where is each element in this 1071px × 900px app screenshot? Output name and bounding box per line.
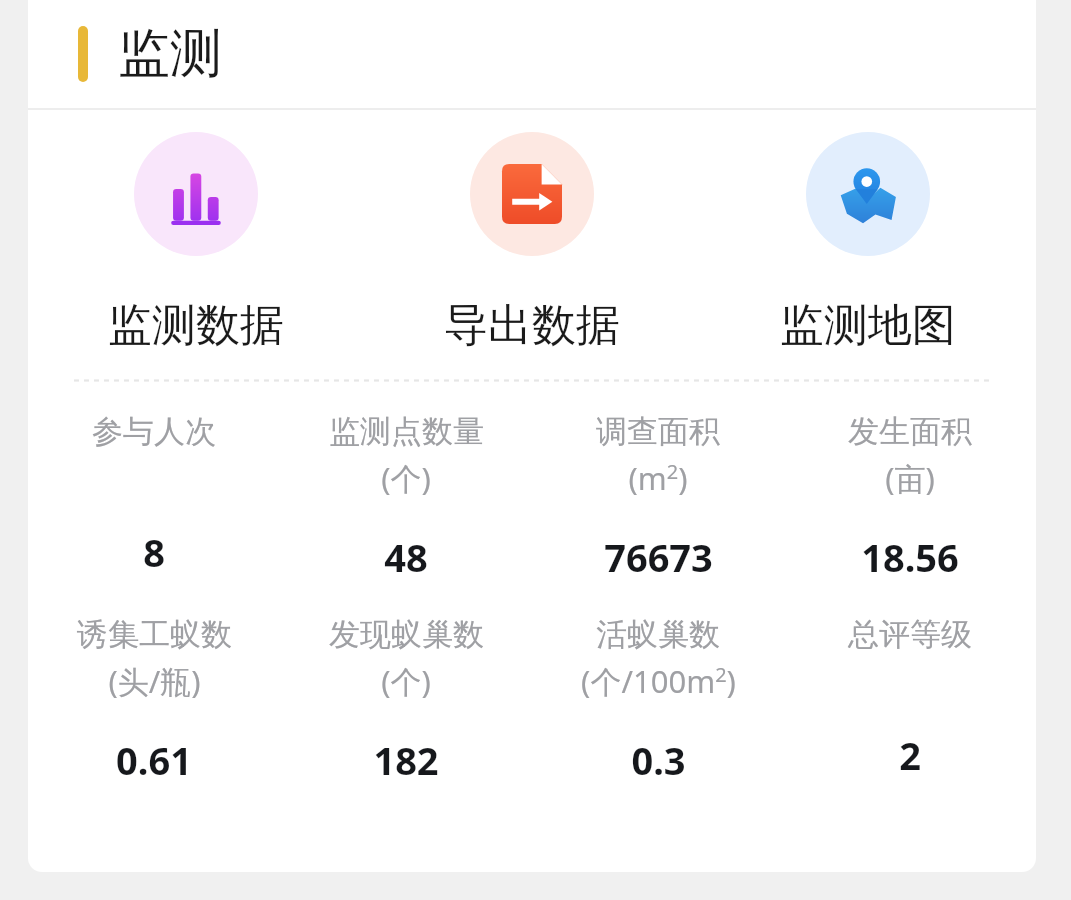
staticText: 导出数据 [444,298,620,353]
other: 导出数据 [502,164,562,224]
staticText: 76673 [604,531,713,583]
staticText: 0.61 [116,734,192,786]
button[interactable]: 导出数据 [364,128,700,357]
staticText: 182 [373,734,439,786]
staticText: (个) [381,660,431,702]
staticText: 48 [384,531,428,583]
other: 监测数据 [165,163,227,225]
staticText: 18.56 [861,531,959,583]
staticText: 2 [899,729,921,781]
staticText: 0.3 [631,734,686,786]
staticText: 监测地图 [780,298,956,353]
staticText: 总评等级 [848,615,972,654]
staticText: 监测点数量 [329,412,484,451]
staticText: 监测 [118,21,222,87]
staticText: 活蚁巢数 [596,615,720,654]
button[interactable]: 监测数据 [28,128,364,357]
staticText: 发生面积 [848,412,972,451]
staticText: (头/瓶) [108,660,201,702]
staticText: 参与人次 [92,412,216,451]
staticText: 诱集工蚁数 [77,615,232,654]
staticText: (个) [381,457,431,499]
staticText: 监测数据 [108,298,284,353]
staticText: (亩) [885,457,935,499]
button[interactable]: 监测地图 [700,128,1036,357]
staticText: 发现蚁巢数 [329,615,484,654]
staticText: 调查面积 [596,412,720,451]
staticText: 8 [143,526,165,578]
other: 监测地图 [837,163,899,225]
staticText: (m2) [628,457,688,499]
staticText: (个/100m2) [581,660,736,702]
